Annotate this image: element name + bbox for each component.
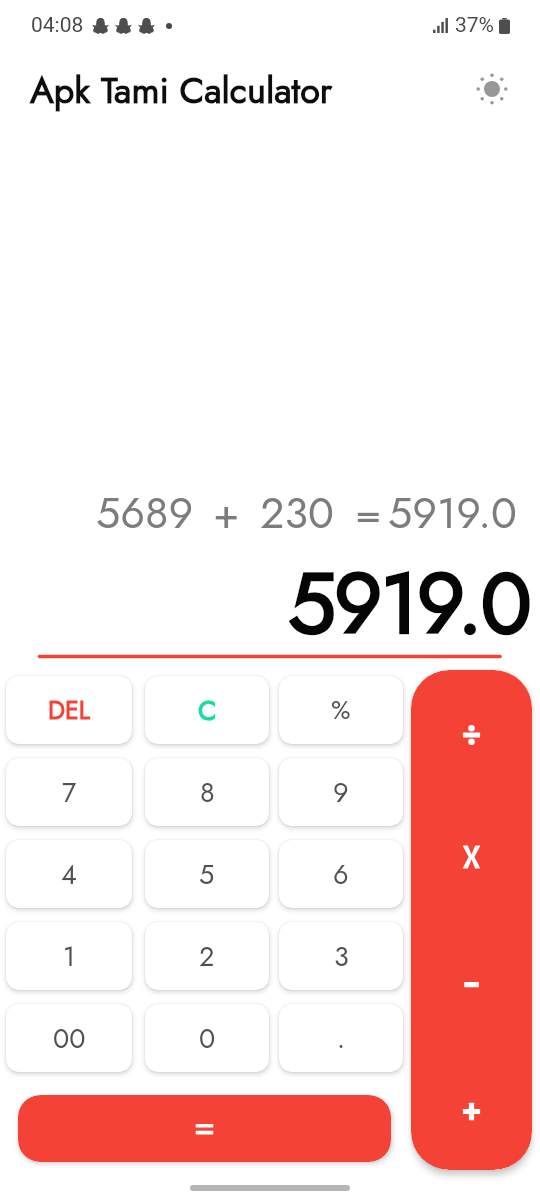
button[interactable]: 3 [279, 922, 403, 990]
button[interactable]: 2 [145, 922, 269, 990]
staticText: 37% [455, 13, 494, 38]
staticText: 0 [199, 1019, 216, 1058]
staticText: = [355, 482, 382, 544]
button[interactable]: 8 [145, 758, 269, 826]
staticText: % [331, 691, 351, 729]
staticText: 5689 [96, 482, 194, 544]
button[interactable]: . [279, 1004, 403, 1072]
button[interactable]: 0 [145, 1004, 269, 1072]
staticText: 8 [200, 773, 215, 812]
staticText: 5919.0 [288, 542, 530, 665]
button[interactable]: DEL [6, 676, 132, 744]
button[interactable]: Add [411, 1045, 532, 1170]
button[interactable]: Divide [411, 670, 532, 795]
button[interactable]: 6 [279, 840, 403, 908]
button[interactable]: 1 [6, 922, 132, 990]
staticText: 230 [260, 482, 334, 544]
staticText: . [337, 1019, 346, 1058]
staticText: + [213, 482, 240, 544]
button[interactable]: C [145, 676, 269, 744]
button[interactable]: 5 [145, 840, 269, 908]
button[interactable]: % [279, 676, 403, 744]
staticText: 3 [334, 937, 349, 976]
staticText: 5919.0 [388, 482, 517, 544]
staticText: 04:08 [31, 13, 84, 38]
button[interactable] [18, 1095, 391, 1162]
button[interactable]: 7 [6, 758, 132, 826]
staticText: Apk Tami Calculator [30, 64, 333, 116]
staticText: 9 [333, 773, 349, 812]
staticText: 1 [63, 937, 76, 976]
staticText: C [198, 691, 217, 730]
staticText: DEL [48, 692, 91, 728]
staticText: 00 [53, 1019, 86, 1058]
staticText: 6 [333, 855, 349, 894]
staticText: 7 [62, 773, 77, 812]
button[interactable]: Multiply [411, 795, 532, 920]
button[interactable]: Toggle dark theme [466, 63, 518, 115]
button[interactable]: 9 [279, 758, 403, 826]
staticText: 4 [61, 855, 77, 894]
button[interactable]: 4 [6, 840, 132, 908]
button[interactable]: 00 [6, 1004, 132, 1072]
button[interactable]: Subtract [411, 920, 532, 1045]
staticText: 5 [199, 855, 215, 894]
staticText: 2 [199, 937, 215, 976]
